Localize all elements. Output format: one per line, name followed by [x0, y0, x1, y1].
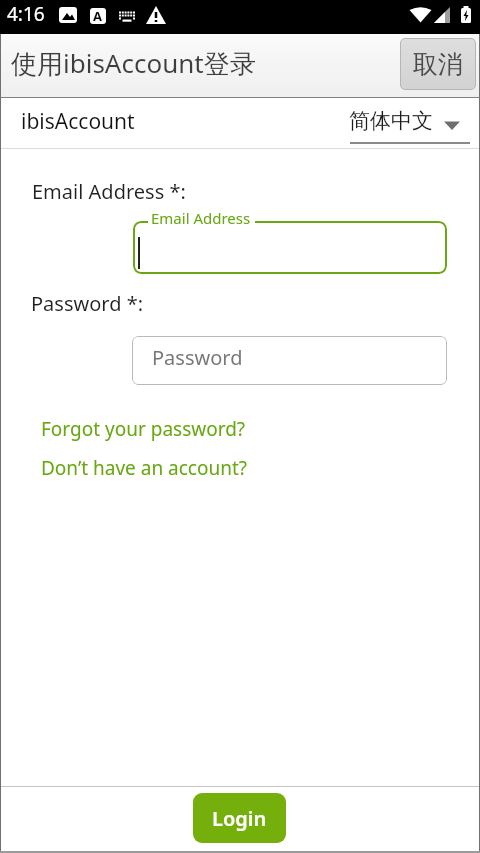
button[interactable]: Login [193, 793, 286, 843]
staticText: 使用ibisAccount登录 [11, 45, 256, 81]
button[interactable]: 简体中文 [344, 104, 474, 146]
staticText: Password *: [31, 290, 144, 317]
staticText: Password [152, 344, 243, 371]
button[interactable]: Don’t have an account? [41, 455, 248, 481]
staticText: 简体中文 [349, 108, 433, 134]
button[interactable]: Password [132, 336, 447, 385]
staticText: A [93, 7, 102, 25]
button[interactable]: 取消 [400, 38, 476, 90]
button[interactable]: Forgot your password? [41, 416, 246, 442]
staticText: 4:16 [7, 1, 45, 27]
staticText: Email Address [151, 208, 251, 228]
staticText: Login [212, 805, 267, 832]
staticText: Email Address *: [32, 178, 186, 205]
staticText: ibisAccount [21, 107, 135, 136]
button[interactable] [133, 221, 447, 274]
staticText: 取消 [413, 49, 463, 80]
